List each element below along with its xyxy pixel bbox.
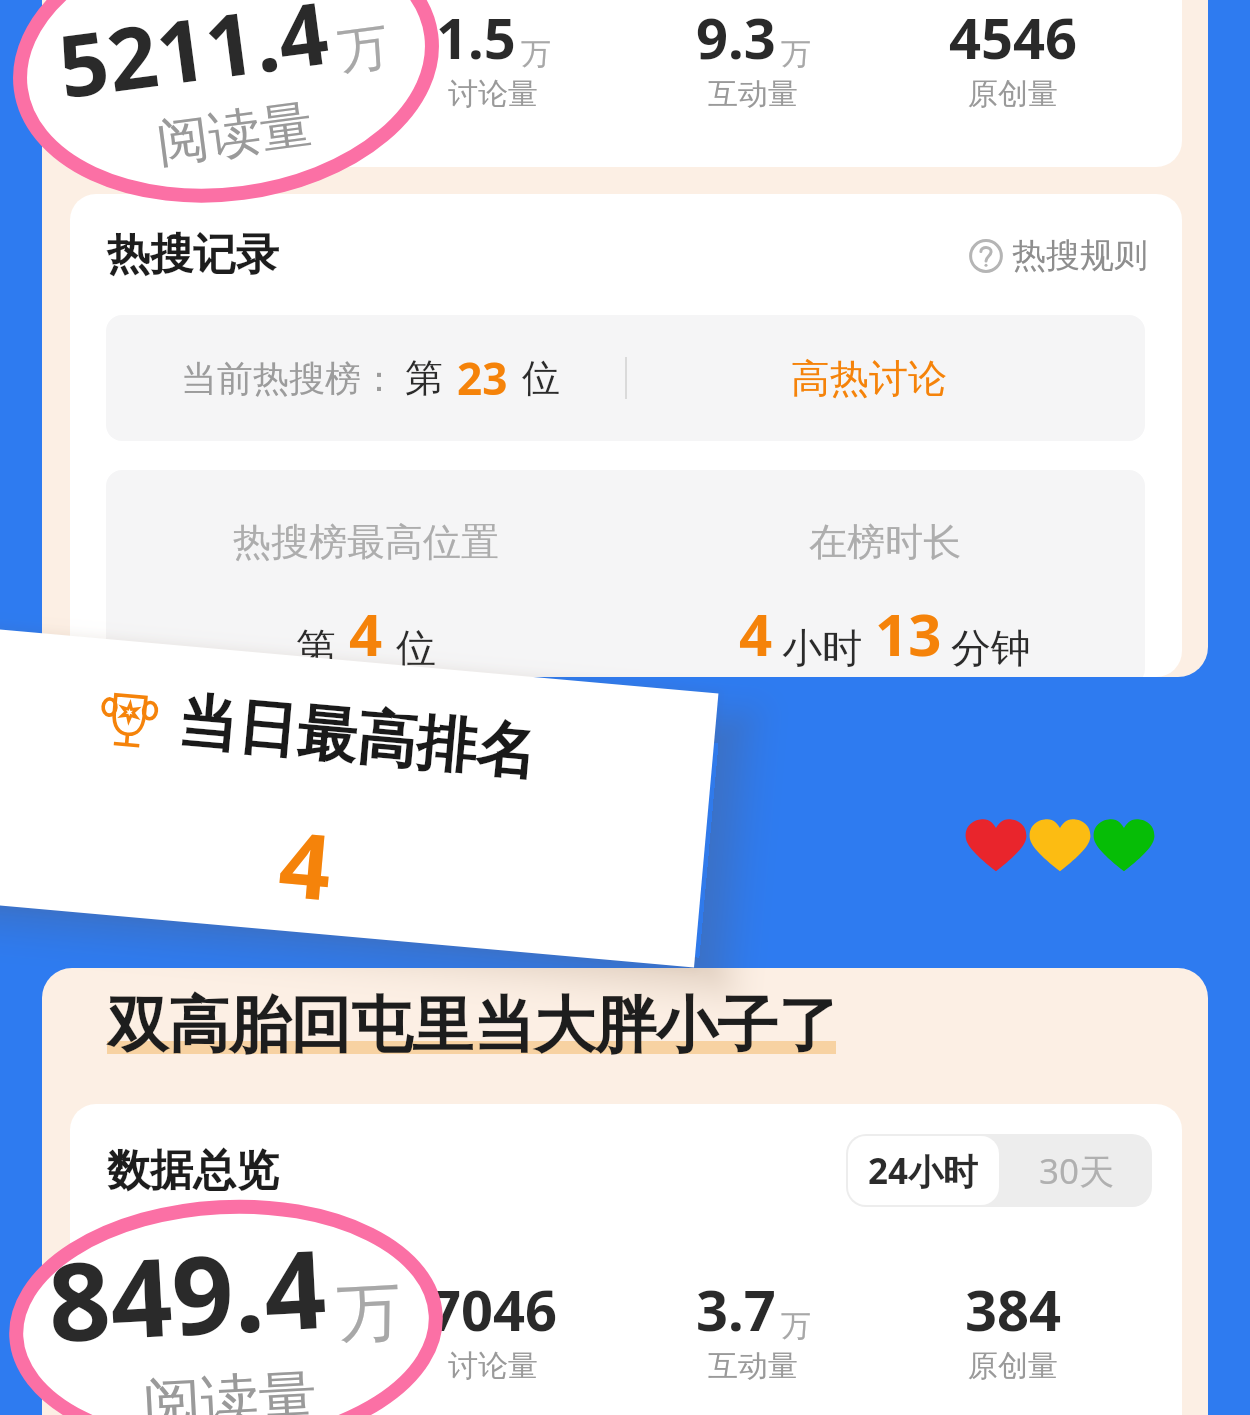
other: 奖杯 (97, 688, 160, 751)
button[interactable]: 1.5 (363, 0, 623, 113)
button[interactable]: 9.3 (623, 0, 883, 113)
button[interactable]: 在榜时长 (625, 470, 1145, 673)
button[interactable]: 当前热搜榜： (106, 315, 1145, 441)
staticText: 849.4 (44, 1213, 330, 1374)
staticText: 1.5 (436, 0, 516, 75)
staticText: 384 (965, 1271, 1062, 1347)
button[interactable]: 奖杯 (0, 613, 718, 967)
staticText: 原创量 (968, 1347, 1058, 1385)
staticText: 热搜榜最高位置 (233, 518, 499, 566)
staticText: 高热讨论 (791, 354, 947, 403)
staticText: 讨论量 (448, 75, 538, 113)
staticText: 4 (739, 594, 773, 673)
staticText: 万 (781, 1307, 811, 1345)
button[interactable]: 热搜榜最高位置 (106, 470, 625, 673)
button[interactable]: 5211.4 (51, 0, 402, 189)
button[interactable]: 3.7 (623, 1271, 883, 1385)
staticText: 30天 (1039, 1147, 1115, 1195)
button[interactable]: 7046 (363, 1271, 623, 1385)
staticText: 13 (875, 594, 942, 673)
staticText: 4546 (949, 0, 1078, 75)
staticText: 互动量 (708, 75, 798, 113)
staticText: 分钟 (951, 623, 1031, 673)
staticText: 小时 (782, 623, 862, 673)
staticText: 当前热搜榜： (181, 356, 397, 401)
staticText: 数据总览 (107, 1144, 279, 1198)
staticText: 万 (781, 35, 811, 73)
staticText: 4 (274, 800, 337, 928)
staticText: 双高胎回屯里当大胖小子了 (107, 987, 839, 1064)
staticText: 4 (349, 594, 383, 673)
staticText: 在榜时长 (809, 518, 961, 566)
staticText: 位 (396, 623, 436, 673)
staticText: 热搜规则 (1012, 234, 1148, 277)
staticText: 第 (405, 354, 443, 402)
staticText: 阅读量 (141, 1360, 319, 1415)
button[interactable]: 帮助 (965, 230, 1152, 281)
staticText: 当日最高排名 (174, 684, 540, 791)
staticText: 热搜记录 (107, 228, 279, 282)
other: 帮助 (969, 239, 1003, 273)
staticText: 7046 (429, 1271, 558, 1347)
button[interactable]: 849.4 (44, 1209, 407, 1415)
staticText: 23 (457, 348, 508, 408)
staticText: 讨论量 (448, 1347, 538, 1385)
staticText: 第 (296, 623, 336, 673)
button[interactable]: 30天 (1001, 1134, 1152, 1207)
button[interactable]: 点赞表情 (964, 817, 1156, 873)
button[interactable]: 24小时 (848, 1136, 999, 1205)
button[interactable]: 384 (883, 1271, 1143, 1385)
staticText: 9.3 (696, 0, 776, 75)
staticText: 24小时 (868, 1147, 979, 1195)
button[interactable]: 4546 (883, 0, 1143, 113)
staticText: 阅读量 (153, 91, 316, 177)
staticText: 万 (521, 35, 551, 73)
staticText: 原创量 (968, 75, 1058, 113)
staticText: 互动量 (708, 1347, 798, 1385)
staticText: 5211.4 (51, 0, 335, 123)
staticText: 万 (335, 15, 393, 84)
staticText: 位 (522, 354, 560, 402)
staticText: 3.7 (696, 1271, 776, 1347)
staticText: 万 (335, 1271, 403, 1355)
